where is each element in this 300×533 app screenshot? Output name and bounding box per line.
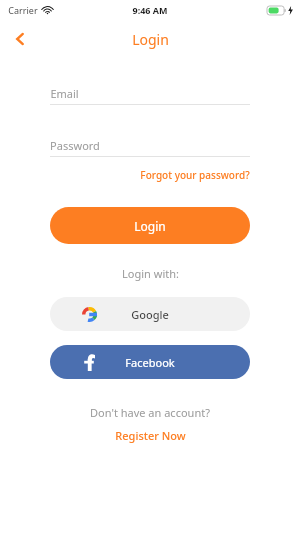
button[interactable]: Login xyxy=(50,207,250,244)
staticText: Email xyxy=(50,86,79,101)
staticText: 9:46 AM xyxy=(132,4,168,16)
button[interactable]: Password xyxy=(50,134,250,156)
staticText: Don't have an account? xyxy=(90,405,210,420)
button[interactable]: Facebook xyxy=(50,345,250,379)
button[interactable]: Register Now xyxy=(107,426,194,445)
staticText: Password xyxy=(50,138,100,153)
staticText: Register Now xyxy=(115,428,186,443)
staticText: Login xyxy=(134,218,166,234)
staticText: Login with: xyxy=(122,266,179,281)
button[interactable]: Google xyxy=(50,297,250,331)
button[interactable]: Back xyxy=(0,20,40,58)
staticText: Login xyxy=(132,30,169,49)
staticText: Carrier xyxy=(8,4,38,16)
staticText: Google xyxy=(131,307,169,322)
button[interactable]: Forgot your password? xyxy=(140,165,250,185)
staticText: Forgot your password? xyxy=(140,168,250,182)
button[interactable]: Email xyxy=(50,82,250,104)
staticText: Facebook xyxy=(125,355,175,370)
